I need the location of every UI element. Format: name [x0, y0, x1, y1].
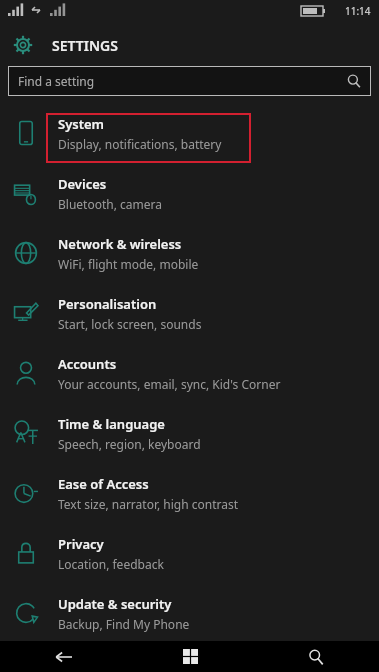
staticText: Speech, region, keyboard	[58, 436, 201, 452]
button[interactable]: Privacy	[0, 533, 379, 589]
staticText: Devices	[58, 175, 107, 193]
staticText: Accounts	[58, 355, 117, 373]
staticText: Network & wireless	[58, 235, 182, 253]
button[interactable]: System	[0, 113, 379, 169]
button[interactable]: Start	[160, 641, 220, 672]
staticText: System	[58, 115, 105, 133]
staticText: 11:14	[345, 4, 371, 18]
button[interactable]: Search	[286, 641, 346, 672]
staticText: WiFi, flight mode, mobile	[58, 256, 199, 272]
staticText: Privacy	[58, 535, 104, 553]
staticText: Ease of Access	[58, 475, 149, 493]
staticText: Update & security	[58, 595, 172, 613]
button[interactable]: Devices	[0, 173, 379, 229]
button[interactable]: Personalisation	[0, 293, 379, 349]
button[interactable]: Back	[33, 641, 93, 672]
staticText: SETTINGS	[52, 36, 118, 55]
staticText: Text size, narrator, high contrast	[58, 496, 238, 512]
staticText: Time & language	[58, 415, 165, 433]
button[interactable]: Update & security	[0, 593, 379, 649]
button[interactable]: Accounts	[0, 353, 379, 409]
staticText: Bluetooth, camera	[58, 196, 162, 212]
button[interactable]: Time & language	[0, 413, 379, 469]
staticText: Personalisation	[58, 295, 157, 313]
staticText: Your accounts, email, sync, Kid's Corner	[58, 376, 281, 392]
staticText: Display, notifications, battery	[58, 136, 222, 152]
staticText: Start, lock screen, sounds	[58, 316, 202, 332]
button[interactable]: Find a setting	[8, 66, 371, 96]
button[interactable]: Network & wireless	[0, 233, 379, 289]
staticText: Backup, Find My Phone	[58, 616, 190, 632]
staticText: Location, feedback	[58, 556, 164, 572]
staticText: Find a setting	[18, 73, 95, 89]
button[interactable]: Ease of Access	[0, 473, 379, 529]
